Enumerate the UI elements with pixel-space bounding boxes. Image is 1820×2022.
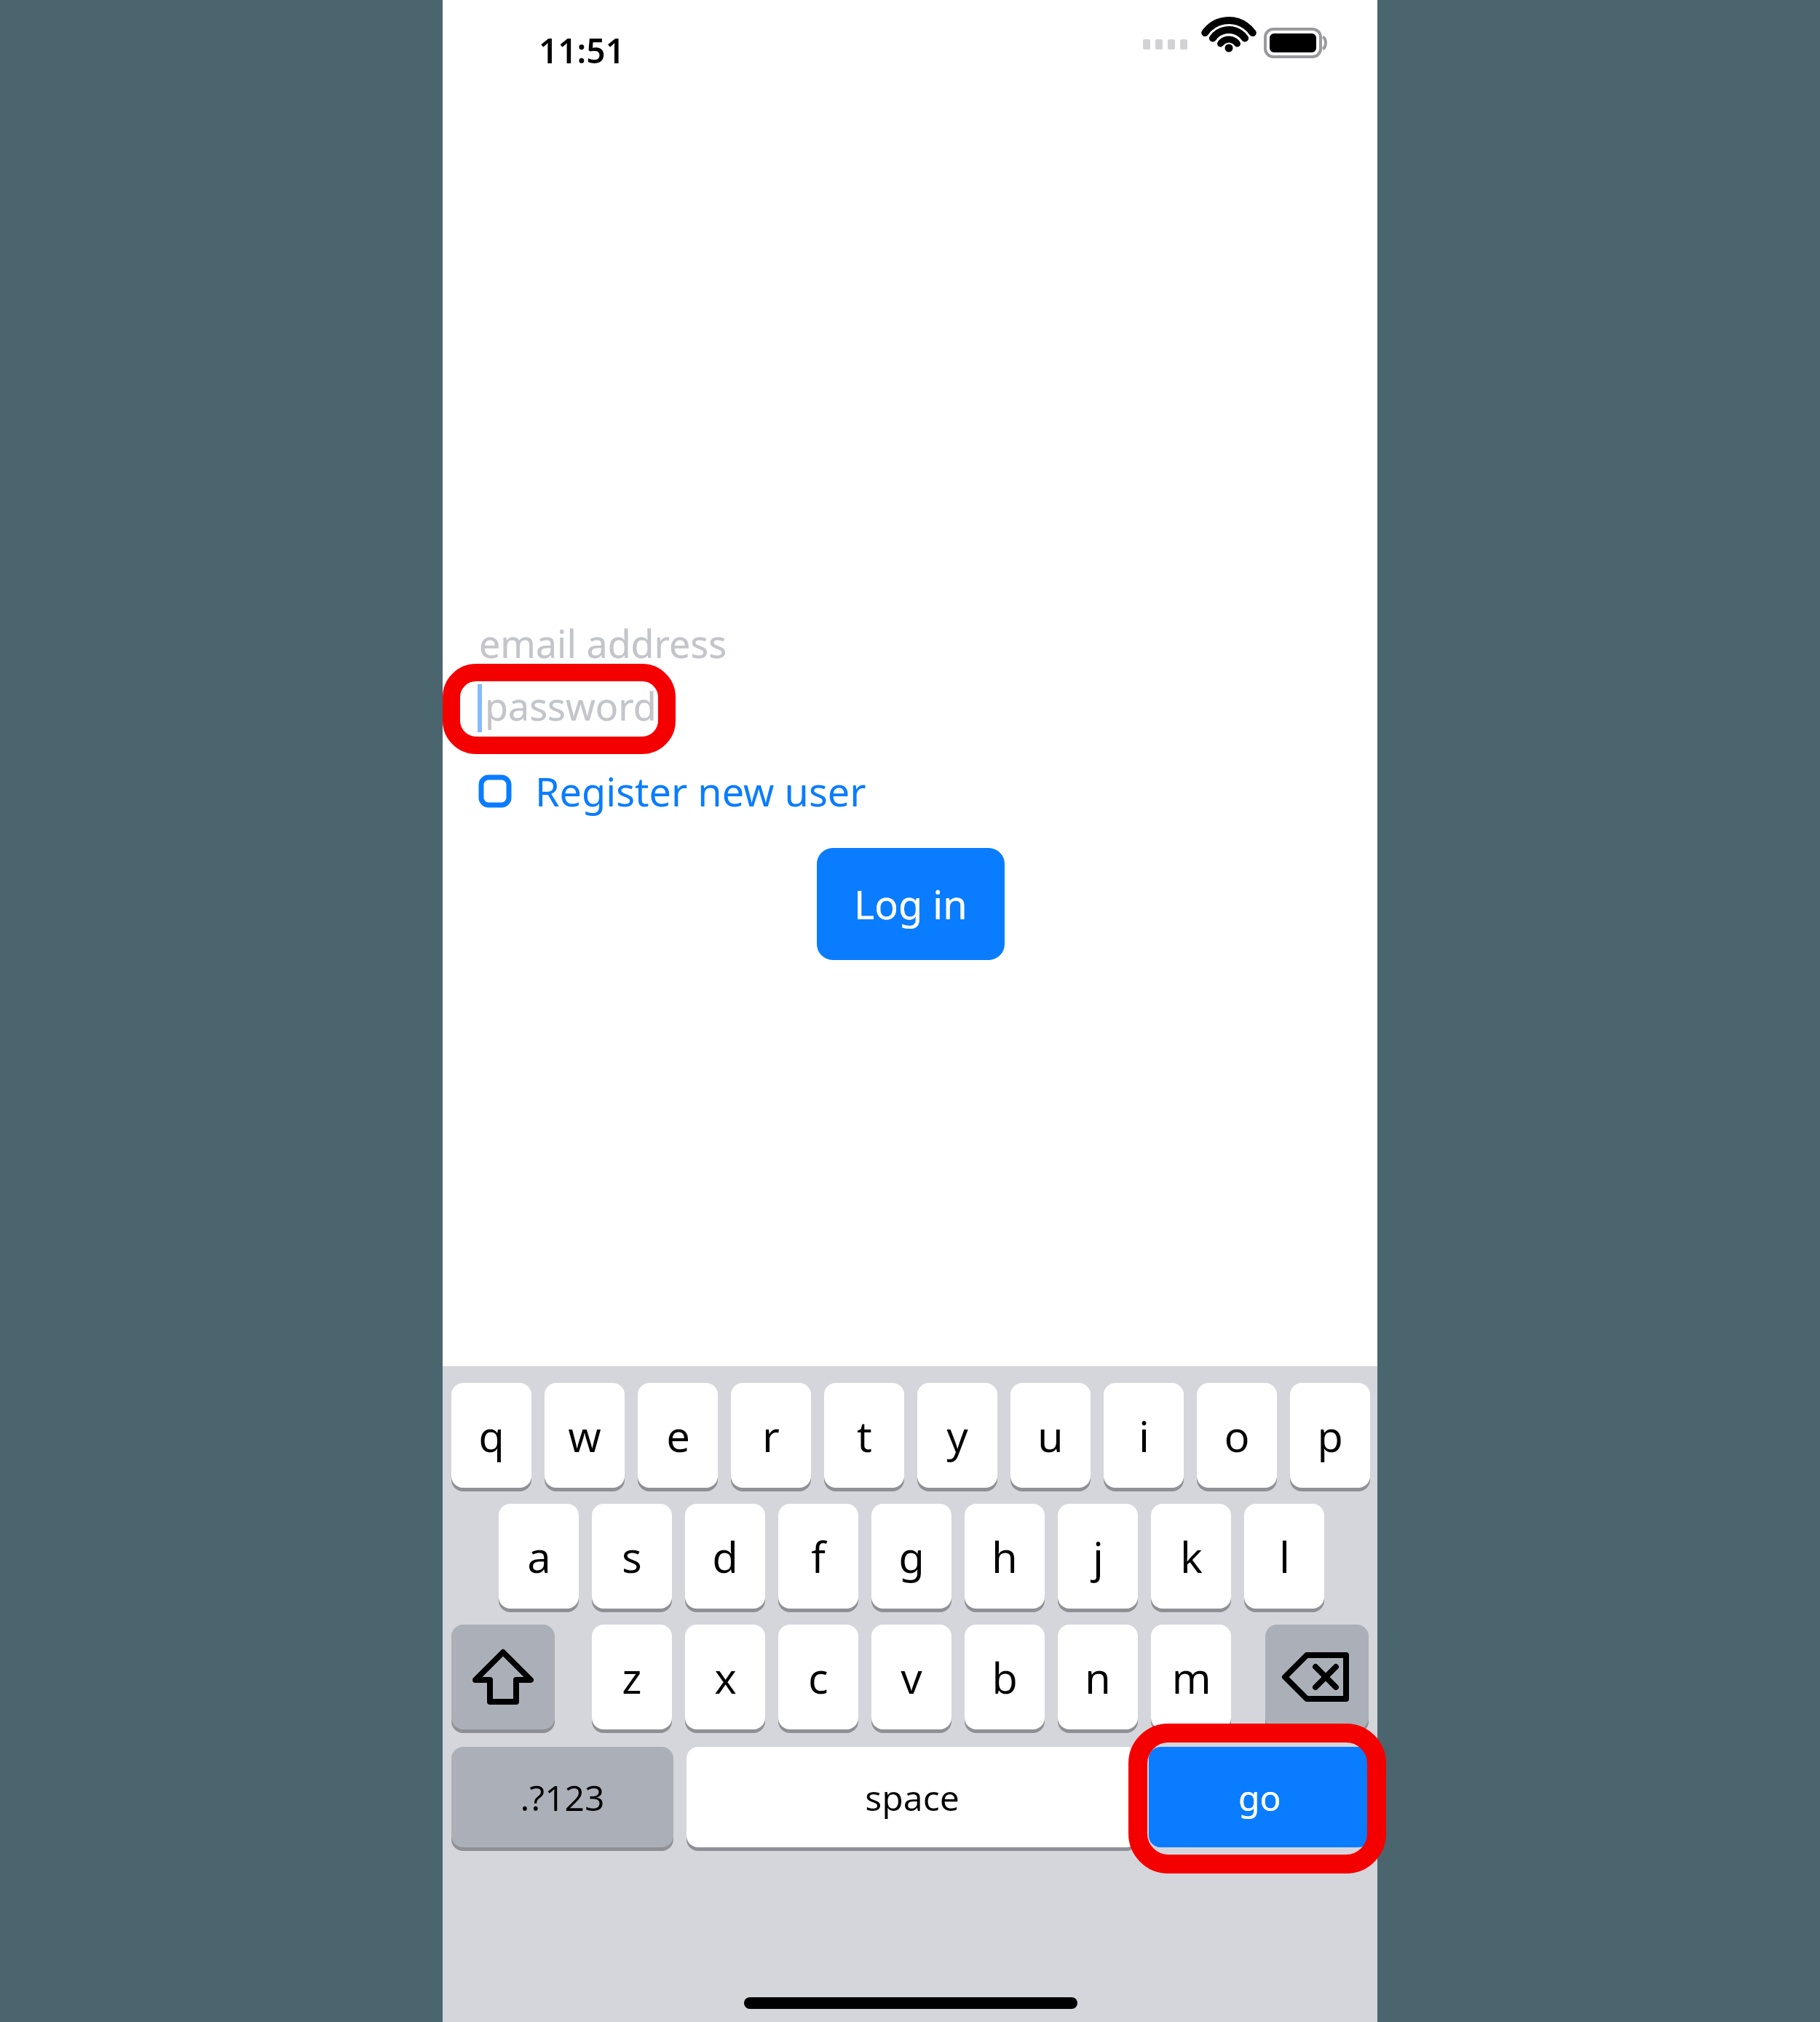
- button[interactable]: c: [778, 1625, 858, 1734]
- staticText: Log in: [854, 877, 968, 931]
- staticText: u: [1037, 1407, 1064, 1464]
- button[interactable]: v: [871, 1625, 951, 1734]
- staticText: f: [811, 1528, 826, 1585]
- button[interactable]: k: [1151, 1504, 1231, 1613]
- button[interactable]: .?123: [451, 1747, 673, 1852]
- button[interactable]: Backspace: [1265, 1625, 1369, 1734]
- staticText: email address: [479, 617, 727, 667]
- button[interactable]: f: [778, 1504, 858, 1613]
- staticText: w: [568, 1407, 601, 1464]
- staticText: p: [1317, 1407, 1343, 1464]
- staticText: .?123: [520, 1774, 605, 1821]
- button[interactable]: Shift: [451, 1625, 555, 1734]
- button[interactable]: Log in: [817, 848, 1005, 960]
- staticText: v: [901, 1649, 922, 1706]
- button[interactable]: b: [965, 1625, 1045, 1734]
- button[interactable]: p: [1290, 1383, 1370, 1492]
- button[interactable]: t: [824, 1383, 904, 1492]
- staticText: a: [527, 1528, 551, 1585]
- staticText: y: [946, 1407, 968, 1464]
- staticText: l: [1279, 1528, 1290, 1585]
- staticText: space: [865, 1774, 960, 1821]
- button[interactable]: j: [1058, 1504, 1138, 1613]
- staticText: b: [992, 1649, 1018, 1706]
- button[interactable]: g: [871, 1504, 951, 1613]
- button[interactable]: y: [917, 1383, 997, 1492]
- button[interactable]: w: [545, 1383, 625, 1492]
- button[interactable]: n: [1058, 1625, 1138, 1734]
- staticText: 11:51: [539, 28, 625, 74]
- staticText: g: [898, 1528, 925, 1585]
- staticText: j: [1093, 1528, 1104, 1585]
- staticText: q: [478, 1407, 505, 1464]
- staticText: m: [1171, 1649, 1211, 1706]
- staticText: s: [622, 1528, 642, 1585]
- staticText: h: [992, 1528, 1018, 1585]
- staticText: password: [485, 680, 657, 732]
- staticText: r: [762, 1407, 780, 1464]
- button[interactable]: q: [451, 1383, 531, 1492]
- button[interactable]: x: [685, 1625, 765, 1734]
- button[interactable]: space: [687, 1747, 1138, 1852]
- button[interactable]: l: [1244, 1504, 1324, 1613]
- button[interactable]: go: [1149, 1747, 1370, 1847]
- staticText: Register new user: [535, 764, 866, 818]
- button[interactable]: u: [1010, 1383, 1091, 1492]
- button[interactable]: h: [965, 1504, 1045, 1613]
- button[interactable]: r: [731, 1383, 811, 1492]
- staticText: k: [1180, 1528, 1203, 1585]
- button[interactable]: o: [1197, 1383, 1277, 1492]
- button[interactable]: s: [592, 1504, 672, 1613]
- button[interactable]: m: [1151, 1625, 1231, 1734]
- button[interactable]: e: [638, 1383, 718, 1492]
- button[interactable]: email address: [466, 616, 1340, 665]
- staticText: e: [666, 1407, 690, 1464]
- staticText: z: [622, 1649, 642, 1706]
- button[interactable]: d: [685, 1504, 765, 1613]
- staticText: c: [808, 1649, 828, 1706]
- button[interactable]: z: [592, 1625, 672, 1734]
- staticText: i: [1139, 1407, 1150, 1464]
- button[interactable]: a: [499, 1504, 579, 1613]
- staticText: x: [714, 1649, 737, 1706]
- button[interactable]: Register new user: [477, 764, 866, 818]
- staticText: t: [857, 1407, 872, 1464]
- staticText: n: [1085, 1649, 1111, 1706]
- button[interactable]: password: [466, 674, 1340, 742]
- button[interactable]: i: [1104, 1383, 1184, 1492]
- staticText: go: [1238, 1774, 1281, 1821]
- staticText: d: [712, 1528, 738, 1585]
- staticText: o: [1224, 1407, 1250, 1464]
